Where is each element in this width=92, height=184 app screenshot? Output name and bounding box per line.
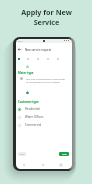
staticText: Meter type: [18, 71, 34, 75]
staticText: New service request: [25, 48, 51, 52]
staticText: Back: [20, 153, 25, 156]
staticText: Apply for New Service: [21, 7, 72, 27]
staticText: The unit is requesting a new meter to be…: [26, 77, 66, 84]
button[interactable]: Residential: [18, 105, 69, 113]
staticText: Water Offices: [25, 115, 44, 119]
other: Back: [18, 48, 21, 51]
staticText: 9:41: [18, 39, 23, 42]
button[interactable]: Next: [59, 152, 69, 156]
button[interactable]: Commercial: [18, 121, 69, 129]
staticText: Next: [62, 153, 67, 156]
staticText: Commercial: [25, 123, 42, 127]
button[interactable]: Back: [18, 152, 26, 156]
staticText: Residential: [25, 107, 40, 111]
staticText: Customer type: [18, 100, 39, 104]
other: Back: [23, 164, 25, 166]
button[interactable]: Water Offices: [18, 113, 69, 121]
button[interactable]: Back: [18, 43, 69, 56]
